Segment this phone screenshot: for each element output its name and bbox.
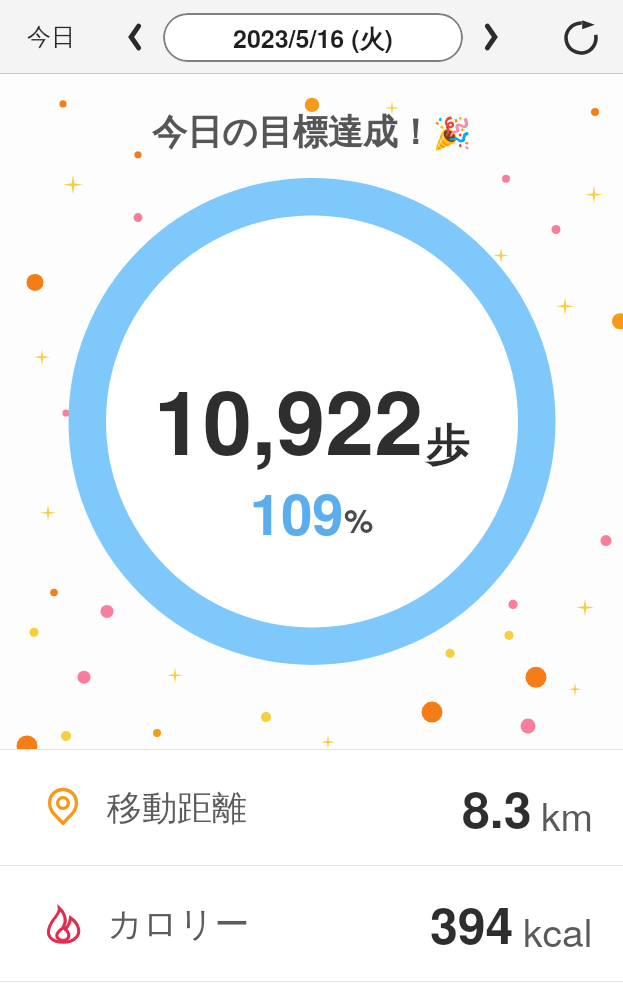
staticText: 今日 [27, 22, 75, 52]
button[interactable]: Previous day [113, 15, 157, 59]
staticText: 今日の目標達成！🎉 [152, 110, 472, 154]
staticText: 10,922 [154, 356, 424, 482]
staticText: カロリー [107, 902, 250, 946]
button[interactable]: 2023/5/16 (火) [163, 13, 463, 62]
staticText: 394 [430, 888, 514, 960]
button[interactable]: Refresh [555, 11, 607, 63]
staticText: 2023/5/16 (火) [233, 20, 393, 56]
button[interactable]: Next day [469, 15, 513, 59]
staticText: km [541, 786, 593, 842]
staticText: 移動距離 [107, 786, 247, 830]
button[interactable]: カロリー [0, 866, 623, 981]
staticText: % [344, 496, 374, 543]
staticText: 8.3 [462, 772, 532, 844]
staticText: kcal [523, 902, 593, 958]
staticText: 歩 [426, 419, 469, 473]
button[interactable]: 移動距離 [0, 750, 623, 865]
staticText: 109 [250, 472, 344, 552]
button[interactable]: 今日 [0, 10, 102, 64]
